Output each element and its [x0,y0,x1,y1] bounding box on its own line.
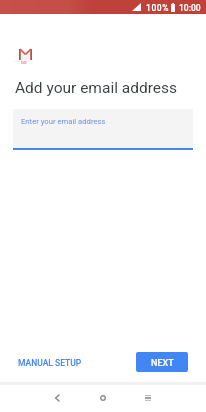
staticText: 10:00 [179,3,201,13]
staticText: Enter your email address [21,117,106,126]
staticText: 100% [146,3,170,13]
button[interactable]: Back [45,386,69,410]
staticText: Add your email address [15,79,178,97]
button[interactable]: Home [91,386,115,410]
button[interactable]: Enter your email address [13,109,193,150]
button[interactable]: NEXT [136,352,188,372]
staticText: GO [21,60,27,65]
staticText: MANUAL SETUP [18,358,82,368]
button[interactable]: Recent apps [136,386,160,410]
staticText: NEXT [151,358,174,369]
button[interactable]: MANUAL SETUP [9,354,82,374]
